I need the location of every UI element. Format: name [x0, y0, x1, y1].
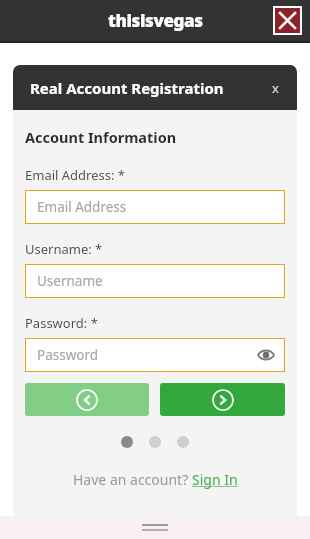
- staticText: Email Address: *: [25, 166, 125, 184]
- staticText: Real Account Registration: [30, 78, 224, 98]
- button[interactable]: Email Address: [25, 190, 285, 224]
- button[interactable]: Sign In: [192, 470, 238, 489]
- button[interactable]: Step indicator: [177, 436, 189, 448]
- button[interactable]: Next step: [160, 383, 285, 416]
- staticText: Email Address: [37, 198, 127, 216]
- staticText: Password: [37, 346, 99, 364]
- button[interactable]: Username: [25, 264, 285, 298]
- button[interactable]: Close: [273, 6, 302, 35]
- staticText: x: [272, 79, 279, 97]
- staticText: thisisvegas: [108, 9, 203, 32]
- button[interactable]: Step indicator: [121, 436, 133, 448]
- button[interactable]: Close dialog: [263, 76, 287, 100]
- staticText: Account Information: [25, 127, 177, 147]
- button[interactable]: Show password: [255, 344, 277, 366]
- staticText: Have an account?: [73, 470, 192, 489]
- staticText: Username: *: [25, 240, 103, 258]
- button[interactable]: Step indicator: [149, 436, 161, 448]
- staticText: Password: *: [25, 314, 98, 332]
- button[interactable]: Previous step: [25, 383, 149, 416]
- button[interactable]: Password: [25, 338, 285, 372]
- staticText: Username: [37, 272, 103, 290]
- staticText: Sign In: [192, 470, 238, 489]
